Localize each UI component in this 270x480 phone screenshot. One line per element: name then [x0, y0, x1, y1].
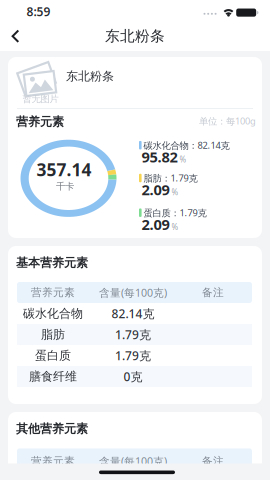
staticText: 千卡 [56, 181, 74, 192]
staticText: 营养元素 [16, 114, 64, 129]
staticText: % [171, 187, 178, 197]
staticText: 1.79克 [115, 347, 151, 363]
staticText: 碳水化合物：82.14克 [144, 139, 230, 151]
staticText: 膳食纤维 [29, 369, 77, 384]
staticText: 8:59 [26, 3, 50, 19]
staticText: 备注 [202, 455, 224, 468]
staticText: 脂肪：1.79克 [144, 172, 198, 184]
staticText: 1.79克 [115, 326, 151, 342]
staticText: 单位：每100g [199, 115, 256, 127]
staticText: 基本营养元素 [16, 255, 88, 270]
staticText: % [179, 154, 186, 165]
staticText: 东北粉条 [105, 27, 165, 45]
staticText: 95.82 [141, 147, 177, 167]
staticText: 357.14 [36, 158, 91, 181]
staticText: 营养元素 [31, 286, 75, 299]
staticText: 脂肪 [41, 327, 65, 342]
staticText: 碳水化合物 [23, 306, 83, 321]
staticText: 备注 [202, 286, 224, 299]
staticText: 含量(每100克) [99, 285, 167, 300]
staticText: % [171, 222, 178, 232]
staticText: 暂无图片 [22, 93, 58, 105]
staticText: 82.14克 [111, 305, 154, 321]
staticText: 2.09 [141, 180, 169, 199]
staticText: 其他营养元素 [16, 421, 88, 436]
staticText: 0克 [123, 368, 142, 384]
staticText: 蛋白质 [35, 348, 71, 363]
staticText: 含量(每100克) [99, 454, 167, 468]
staticText: 蛋白质：1.79克 [144, 206, 207, 219]
staticText: 2.09 [141, 215, 169, 234]
button[interactable]: Back [0, 24, 30, 50]
staticText: 营养元素 [31, 455, 75, 468]
staticText: 东北粉条 [66, 69, 114, 84]
